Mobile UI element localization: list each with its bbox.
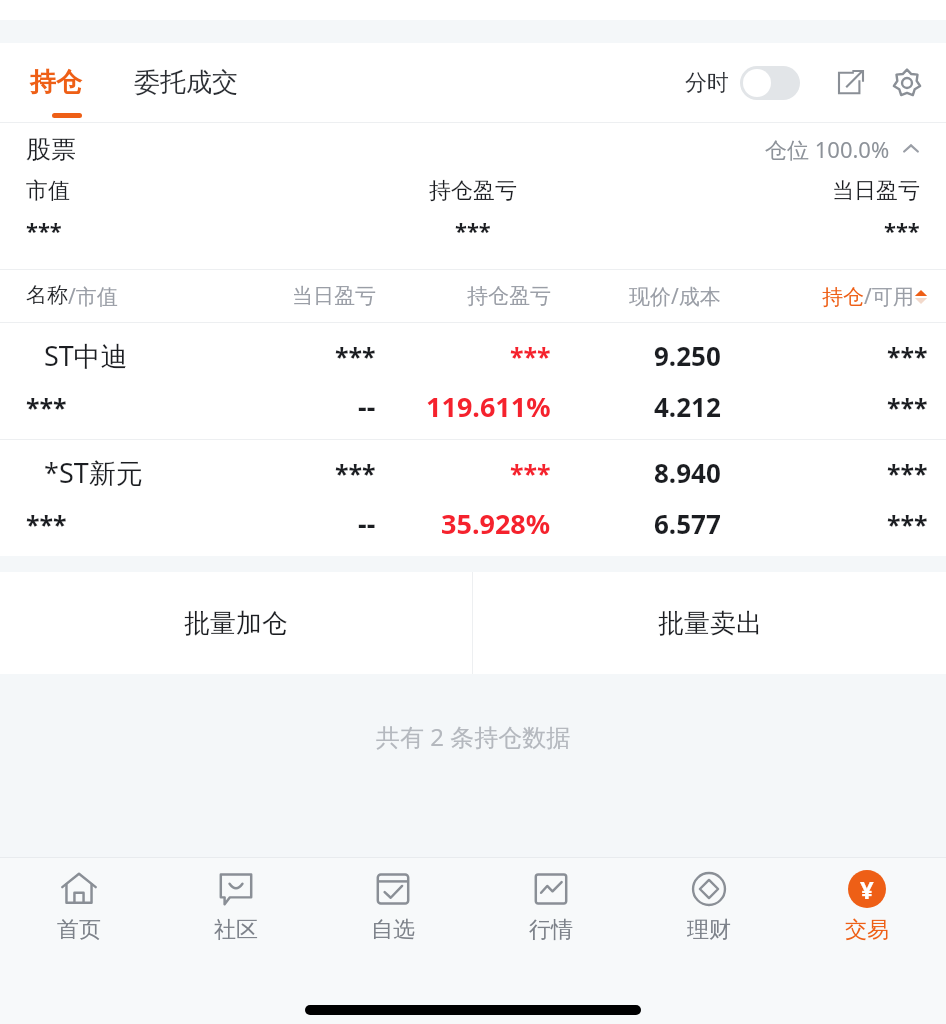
staticText: *** xyxy=(887,339,928,373)
staticText: 共有 2 条持仓数据 xyxy=(376,720,571,753)
staticText: 自选 xyxy=(371,916,415,944)
staticText: -- xyxy=(358,388,376,425)
button[interactable]: 持仓 xyxy=(26,58,86,107)
button[interactable]: 委托成交 xyxy=(130,58,242,107)
button[interactable]: 批量加仓 xyxy=(0,572,472,674)
staticText: *** xyxy=(884,215,920,245)
button[interactable]: Settings xyxy=(884,60,930,106)
button[interactable]: ST中迪 xyxy=(0,323,946,439)
staticText: 理财 xyxy=(687,916,731,944)
button[interactable]: Share xyxy=(828,60,874,106)
staticText: 仓位 100.0% xyxy=(765,134,890,164)
staticText: *** xyxy=(455,215,491,245)
staticText: *** xyxy=(26,215,62,245)
staticText: 8.940 xyxy=(654,455,721,490)
staticText: 行情 xyxy=(529,916,573,944)
button[interactable]: 自选 xyxy=(314,858,472,968)
staticText: 现价/成本 xyxy=(629,282,721,311)
staticText: *** xyxy=(887,390,928,424)
button[interactable]: *ST新元 xyxy=(0,440,946,556)
staticText: ST中迪 xyxy=(44,337,128,374)
staticText: *** xyxy=(887,456,928,490)
staticText: 分时 xyxy=(685,69,729,97)
staticText: 股票 xyxy=(26,134,76,165)
staticText: 119.611% xyxy=(426,388,551,425)
button[interactable]: 分时 xyxy=(685,66,800,100)
staticText: /市值 xyxy=(68,282,118,311)
staticText: 名称 xyxy=(26,282,68,308)
staticText: 首页 xyxy=(57,916,101,944)
staticText: 批量卖出 xyxy=(658,607,762,640)
staticText: 委托成交 xyxy=(134,66,238,99)
staticText: *** xyxy=(510,339,551,373)
button[interactable]: ¥ xyxy=(788,858,946,968)
staticText: 市值 xyxy=(26,177,70,205)
staticText: *** xyxy=(510,456,551,490)
staticText: /可用 xyxy=(864,282,914,311)
staticText: *** xyxy=(26,390,67,424)
staticText: *** xyxy=(26,507,67,541)
staticText: 持仓 xyxy=(30,66,82,99)
staticText: ¥ xyxy=(860,873,874,906)
staticText: 6.577 xyxy=(654,506,721,541)
staticText: -- xyxy=(358,505,376,542)
staticText: 持仓 xyxy=(822,284,864,310)
staticText: 社区 xyxy=(214,916,258,944)
staticText: *** xyxy=(335,456,376,490)
staticText: 批量加仓 xyxy=(184,607,288,640)
staticText: 当日盈亏 xyxy=(292,283,376,309)
staticText: 持仓盈亏 xyxy=(467,283,551,309)
staticText: *ST新元 xyxy=(44,454,143,491)
button[interactable]: 首页 xyxy=(0,858,157,968)
staticText: 当日盈亏 xyxy=(832,177,920,205)
staticText: *** xyxy=(335,339,376,373)
button[interactable]: 行情 xyxy=(472,858,630,968)
staticText: 35.928% xyxy=(441,505,551,542)
staticText: 交易 xyxy=(845,916,889,944)
staticText: 9.250 xyxy=(654,338,721,373)
button[interactable]: 理财 xyxy=(630,858,788,968)
staticText: *** xyxy=(887,507,928,541)
staticText: 4.212 xyxy=(654,389,721,424)
button[interactable]: 批量卖出 xyxy=(473,572,946,674)
button[interactable]: 持仓 xyxy=(822,282,928,311)
button[interactable]: 社区 xyxy=(157,858,314,968)
staticText: 持仓盈亏 xyxy=(429,177,517,205)
button[interactable]: 股票 xyxy=(0,123,946,175)
